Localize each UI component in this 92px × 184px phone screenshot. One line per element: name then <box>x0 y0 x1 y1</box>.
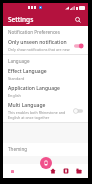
button[interactable]: Menu <box>7 166 17 176</box>
button[interactable]: On <box>73 42 84 50</box>
button[interactable]: Home <box>48 166 58 176</box>
staticText: Multi Language <box>8 102 46 109</box>
button[interactable]: Only unseen notification <box>3 37 88 54</box>
staticText: Only unseen notification <box>8 39 67 46</box>
button[interactable]: Multi Language <box>3 100 88 122</box>
button[interactable]: Search <box>72 14 83 25</box>
staticText: Settings <box>8 15 34 24</box>
button[interactable]: Store <box>74 166 84 176</box>
button[interactable]: Library <box>61 166 71 176</box>
button[interactable]: Add <box>40 157 52 169</box>
staticText: Language <box>8 58 30 64</box>
button[interactable]: Application Language <box>3 83 88 100</box>
staticText: Application Language <box>8 85 60 92</box>
staticText: Theming <box>8 146 28 152</box>
staticText: Only show notifications that are new <box>8 47 70 52</box>
staticText: Notification Preferences <box>8 29 60 35</box>
button[interactable]: Effect Language <box>3 66 88 83</box>
staticText: English <box>8 93 21 98</box>
staticText: Effect Language <box>8 68 47 75</box>
staticText: This enables both Rhinestone and English… <box>8 110 71 120</box>
button[interactable]: Off <box>73 107 84 115</box>
staticText: Standard <box>8 76 25 81</box>
